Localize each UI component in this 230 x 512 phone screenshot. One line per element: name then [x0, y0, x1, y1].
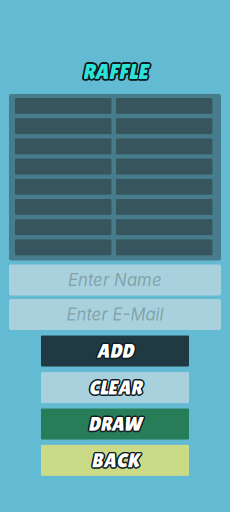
staticText: DRAW: [89, 414, 143, 436]
staticText: DRAW: [89, 413, 143, 435]
staticText: RAFFLE: [84, 61, 149, 85]
staticText: CLEAR: [89, 375, 142, 398]
staticText: BACK: [92, 448, 140, 470]
staticText: ADD: [95, 339, 132, 361]
staticText: BACK: [91, 449, 139, 471]
staticText: ADD: [95, 341, 132, 363]
staticText: BACK: [90, 450, 138, 472]
staticText: RAFFLE: [82, 61, 147, 85]
staticText: CLEAR: [88, 375, 141, 397]
staticText: CLEAR: [89, 377, 142, 400]
staticText: DRAW: [88, 414, 142, 436]
staticText: RAFFLE: [81, 61, 146, 85]
staticText: CLEAR: [88, 376, 141, 399]
staticText: ADD: [96, 340, 133, 362]
staticText: CLEAR: [87, 376, 140, 399]
button[interactable]: Enter Name: [9, 264, 221, 295]
staticText: DRAW: [87, 412, 141, 434]
staticText: BACK: [90, 448, 138, 470]
staticText: DRAW: [86, 413, 140, 435]
staticText: RAFFLE: [82, 58, 147, 82]
staticText: BACK: [91, 448, 139, 470]
staticText: ADD: [96, 341, 133, 363]
staticText: BACK: [92, 449, 140, 471]
staticText: DRAW: [89, 412, 143, 434]
staticText: RAFFLE: [82, 59, 147, 84]
staticText: CLEAR: [87, 377, 140, 400]
staticText: ADD: [98, 340, 135, 362]
staticText: ADD: [95, 340, 132, 362]
staticText: RAFFLE: [81, 59, 146, 84]
staticText: DRAW: [88, 413, 142, 435]
button[interactable]: DRAW: [41, 408, 189, 439]
staticText: ADD: [97, 339, 134, 361]
staticText: Enter E-Mail: [66, 304, 163, 325]
staticText: CLEAR: [88, 378, 141, 400]
button[interactable]: CLEAR: [41, 372, 189, 403]
staticText: DRAW: [87, 414, 141, 436]
button[interactable]: ADD: [41, 335, 189, 366]
staticText: RAFFLE: [84, 58, 149, 82]
staticText: BACK: [91, 451, 139, 473]
staticText: Enter Name: [68, 270, 162, 290]
staticText: DRAW: [88, 411, 142, 434]
staticText: RAFFLE: [81, 58, 146, 82]
staticText: CLEAR: [87, 375, 140, 398]
staticText: CLEAR: [90, 376, 143, 399]
staticText: ADD: [97, 341, 134, 363]
staticText: ADD: [96, 338, 133, 361]
staticText: BACK: [89, 449, 137, 471]
staticText: BACK: [92, 450, 140, 472]
button[interactable]: BACK: [41, 445, 189, 476]
button[interactable]: Enter E-Mail: [9, 299, 221, 330]
staticText: RAFFLE: [84, 59, 149, 84]
